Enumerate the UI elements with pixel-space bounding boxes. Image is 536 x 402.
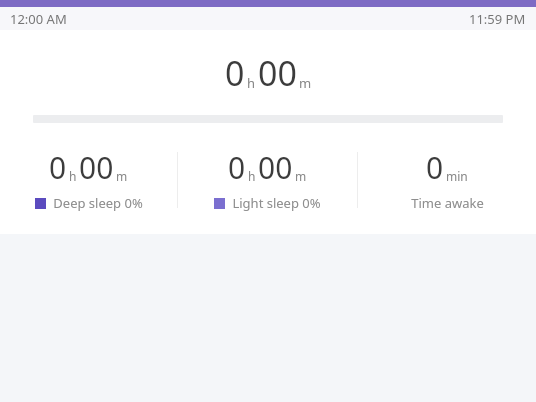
staticText: Light sleep 0% bbox=[232, 194, 321, 212]
staticText: 0 bbox=[228, 147, 246, 188]
staticText: m bbox=[295, 168, 307, 184]
staticText: 0 bbox=[49, 147, 67, 188]
staticText: h bbox=[69, 168, 77, 184]
staticText: 00 bbox=[79, 147, 114, 188]
staticText: 0 bbox=[225, 50, 245, 96]
button[interactable]: 0 bbox=[0, 30, 536, 115]
button[interactable]: 0 bbox=[358, 147, 536, 212]
staticText: 00 bbox=[258, 50, 297, 96]
staticText: m bbox=[299, 74, 312, 92]
staticText: h bbox=[248, 168, 256, 184]
button[interactable]: 0 bbox=[178, 147, 357, 212]
staticText: min bbox=[446, 168, 468, 184]
staticText: 12:00 AM bbox=[10, 10, 67, 28]
staticText: 11:59 PM bbox=[469, 10, 526, 28]
staticText: 0 bbox=[426, 147, 444, 188]
staticText: 00 bbox=[258, 147, 293, 188]
staticText: m bbox=[116, 168, 128, 184]
staticText: Deep sleep 0% bbox=[53, 194, 143, 212]
button[interactable]: 0 bbox=[0, 147, 177, 212]
staticText: h bbox=[247, 74, 256, 92]
staticText: Time awake bbox=[411, 194, 484, 212]
